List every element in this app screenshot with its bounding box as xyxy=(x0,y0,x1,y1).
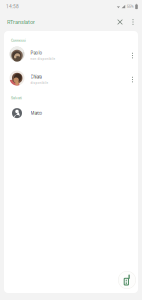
staticText: disponibile xyxy=(30,81,48,85)
staticText: Chiara xyxy=(30,74,41,80)
staticText: Connessi xyxy=(11,38,26,43)
staticText: Salvati xyxy=(11,96,22,100)
button[interactable]: Chiara xyxy=(4,68,138,92)
staticText: Marco xyxy=(30,110,42,116)
staticText: RTranslator xyxy=(7,19,35,25)
button[interactable]: More options xyxy=(127,13,139,31)
staticText: 14:58 xyxy=(6,4,19,9)
button[interactable]: Close xyxy=(113,13,127,31)
staticText: 55% xyxy=(127,4,134,9)
staticText: non disponibile xyxy=(30,57,55,61)
button[interactable]: Paolo xyxy=(4,44,138,68)
staticText: Paolo xyxy=(30,50,42,56)
button[interactable]: Marco xyxy=(4,101,138,125)
button[interactable]: Start conversation xyxy=(116,269,138,291)
